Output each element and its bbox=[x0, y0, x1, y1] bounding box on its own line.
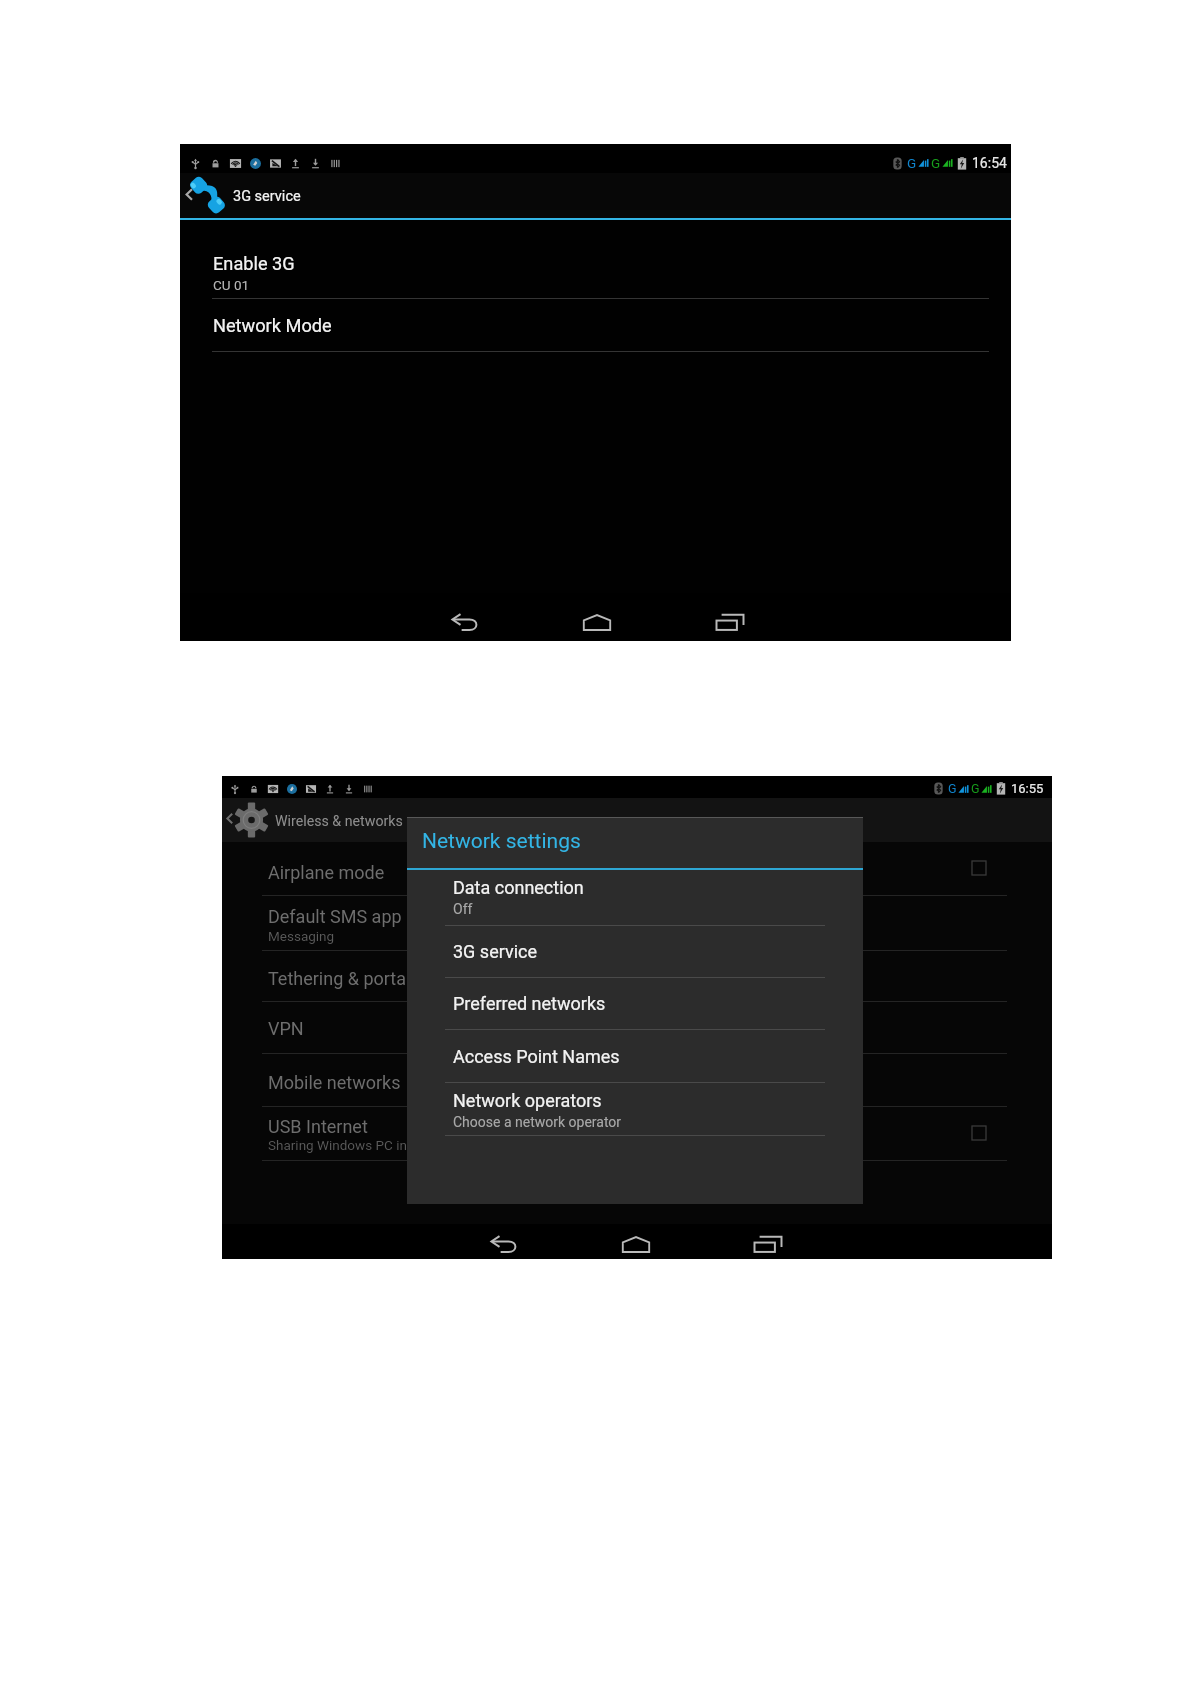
staticText: Enable 3G bbox=[213, 253, 295, 274]
staticText: Choose a network operator bbox=[453, 1114, 622, 1130]
button[interactable]: Navigate up bbox=[180, 173, 1011, 218]
button[interactable] bbox=[407, 1082, 863, 1135]
staticText: Network settings bbox=[422, 829, 581, 854]
staticText: Sharing Windows PC internet bbox=[268, 1137, 443, 1153]
staticText: 3G service bbox=[453, 941, 537, 962]
button[interactable] bbox=[180, 299, 1011, 351]
staticText: Preferred networks bbox=[453, 993, 606, 1014]
staticText: USB Internet bbox=[268, 1116, 368, 1137]
other: Navigate up bbox=[225, 810, 234, 827]
other: Navigate up bbox=[184, 185, 194, 204]
button[interactable] bbox=[222, 1001, 1052, 1053]
button[interactable] bbox=[222, 1106, 1052, 1160]
staticText: Network Mode bbox=[213, 315, 332, 336]
staticText: G bbox=[971, 781, 980, 796]
staticText: Mobile networks bbox=[268, 1072, 401, 1093]
button[interactable]: Back bbox=[482, 1228, 526, 1260]
button[interactable]: Back bbox=[443, 606, 487, 638]
button[interactable] bbox=[222, 1053, 1052, 1106]
staticText: 16:54 bbox=[972, 155, 1007, 171]
staticText: VPN bbox=[268, 1018, 304, 1039]
staticText: G bbox=[948, 781, 957, 796]
staticText: Tethering & portable hotspot bbox=[268, 968, 497, 989]
staticText: Access Point Names bbox=[453, 1046, 620, 1067]
button[interactable] bbox=[407, 925, 863, 977]
staticText: G bbox=[907, 155, 917, 171]
staticText: Default SMS app bbox=[268, 906, 402, 927]
staticText: 16:55 bbox=[1011, 781, 1044, 796]
button[interactable]: Recent apps bbox=[708, 606, 752, 638]
button[interactable] bbox=[180, 219, 1011, 298]
button[interactable] bbox=[222, 895, 1052, 950]
button[interactable] bbox=[407, 977, 863, 1029]
button[interactable] bbox=[222, 842, 1052, 895]
button[interactable] bbox=[222, 950, 1052, 1001]
button[interactable]: Home bbox=[575, 606, 619, 638]
staticText: Data connection bbox=[453, 877, 584, 898]
staticText: G bbox=[931, 155, 941, 171]
staticText: Airplane mode bbox=[268, 862, 385, 883]
staticText: 3G service bbox=[233, 188, 301, 205]
button[interactable] bbox=[407, 873, 863, 925]
staticText: Wireless & networks bbox=[275, 813, 403, 830]
button[interactable] bbox=[407, 1029, 863, 1082]
staticText: Off bbox=[453, 901, 473, 917]
button[interactable]: Navigate up bbox=[222, 798, 1052, 842]
staticText: Network operators bbox=[453, 1090, 602, 1111]
button[interactable]: Home bbox=[614, 1228, 658, 1260]
staticText: CU 01 bbox=[213, 277, 250, 293]
button[interactable]: Recent apps bbox=[746, 1228, 790, 1260]
staticText: Messaging bbox=[268, 928, 335, 944]
